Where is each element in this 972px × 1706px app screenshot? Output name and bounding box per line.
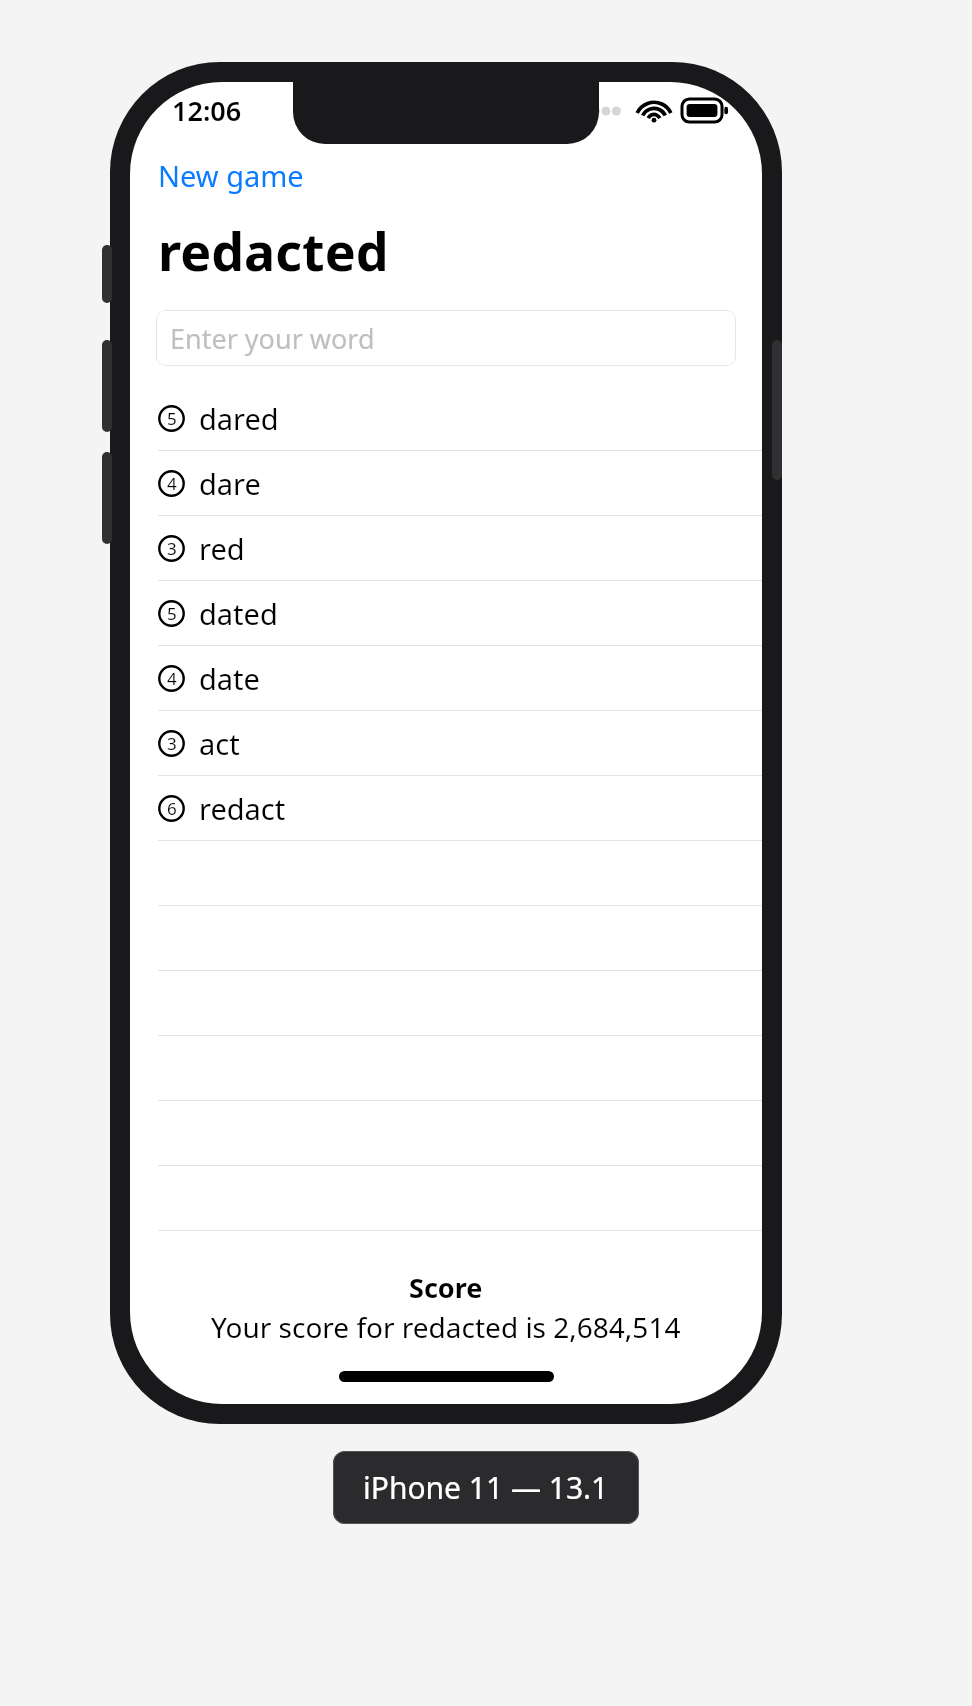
button[interactable]: 4 [130,451,762,516]
button[interactable]: 3 [130,516,762,581]
staticText: redact [199,789,286,828]
staticText: dared [199,399,279,438]
staticText: dare [199,464,261,503]
button[interactable]: New game [158,156,304,195]
staticText: act [199,724,240,763]
staticText: iPhone 11 — 13.1 [363,1467,609,1508]
button[interactable]: 4 [130,646,762,711]
staticText: 4 [167,667,177,690]
button[interactable]: Enter your word [156,310,736,366]
staticText: 4 [167,472,177,495]
staticText: redacted [158,215,389,286]
button[interactable]: 3 [130,711,762,776]
staticText: Enter your word [170,320,375,357]
button[interactable]: iPhone 11 — 13.1 [333,1451,639,1524]
staticText: 6 [167,797,177,820]
staticText: 3 [167,537,177,560]
staticText: date [199,659,260,698]
staticText: Your score for redacted is 2,684,514 [211,1308,681,1346]
button[interactable]: 5 [130,581,762,646]
button[interactable]: 6 [130,776,762,841]
staticText: 5 [167,407,177,430]
staticText: 5 [167,602,177,625]
staticText: 12:06 [172,92,242,129]
staticText: dated [199,594,278,633]
staticText: 3 [167,732,177,755]
staticText: Score [409,1269,483,1306]
button[interactable]: 5 [130,386,762,451]
staticText: red [199,529,245,568]
